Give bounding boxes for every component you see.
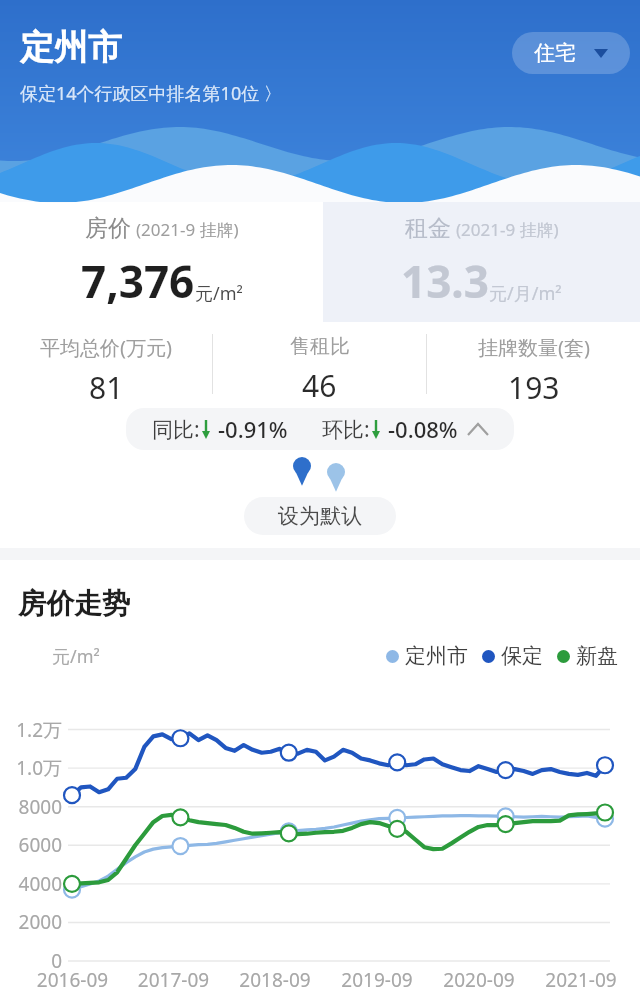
staticText: 新盘 xyxy=(576,643,618,669)
staticText: 2019-09 xyxy=(326,967,428,993)
button[interactable]: 住宅 xyxy=(512,32,630,74)
staticText: 环比: xyxy=(322,415,370,444)
staticText: 81 xyxy=(89,367,124,408)
button[interactable]: 保定 xyxy=(482,643,543,669)
button[interactable]: 定州市 xyxy=(386,643,468,669)
staticText: 元/m² xyxy=(52,644,100,669)
staticText: -0.08% xyxy=(388,414,458,444)
staticText: 售租比 xyxy=(290,334,350,359)
staticText: 8000 xyxy=(0,794,62,820)
staticText: 2017-09 xyxy=(123,967,224,993)
staticText: 2020-09 xyxy=(428,967,530,993)
button[interactable]: 同比: xyxy=(126,408,514,450)
button[interactable]: 挂牌数量(套) xyxy=(427,334,640,408)
staticText: 住宅 xyxy=(534,40,576,66)
button[interactable]: 租金 xyxy=(323,202,640,322)
staticText: 1.0万 xyxy=(0,755,62,781)
staticText: 同比: xyxy=(152,415,200,444)
staticText: 2000 xyxy=(0,909,62,935)
staticText: 平均总价(万元) xyxy=(40,334,172,361)
button[interactable]: 设为默认 xyxy=(244,497,396,535)
staticText: 7,376 xyxy=(81,251,195,311)
other: 收起 xyxy=(468,424,488,435)
staticText: 定州市 xyxy=(20,26,122,69)
button[interactable]: 平均总价(万元) xyxy=(0,334,212,408)
staticText: 13.3 xyxy=(401,251,489,311)
staticText: 1.2万 xyxy=(0,717,62,743)
staticText: 挂牌数量(套) xyxy=(478,334,590,361)
staticText: 房价走势 xyxy=(18,586,130,621)
staticText: -0.91% xyxy=(218,414,288,444)
staticText: 2018-09 xyxy=(224,967,326,993)
staticText: 4000 xyxy=(0,871,62,897)
staticText: 0 xyxy=(0,948,62,974)
staticText: (2021-9 挂牌) xyxy=(136,218,239,241)
staticText: 定州市 xyxy=(405,643,468,669)
button[interactable]: 新盘 xyxy=(557,643,618,669)
button[interactable]: 售租比 xyxy=(213,334,426,406)
staticText: 193 xyxy=(508,367,560,408)
staticText: 2016-09 xyxy=(22,967,123,993)
button[interactable]: 房价 xyxy=(0,202,323,322)
staticText: 46 xyxy=(302,365,337,406)
staticText: 保定14个行政区中排名第10位 〉 xyxy=(20,81,282,106)
staticText: 元/月/m² xyxy=(489,281,562,306)
staticText: 租金 xyxy=(405,214,451,243)
staticText: 设为默认 xyxy=(278,503,362,529)
staticText: 元/m² xyxy=(195,281,243,306)
staticText: 6000 xyxy=(0,832,62,858)
staticText: 2021-09 xyxy=(530,967,632,993)
staticText: 房价 xyxy=(85,214,131,243)
staticText: (2021-9 挂牌) xyxy=(456,218,559,241)
staticText: 保定 xyxy=(501,643,543,669)
